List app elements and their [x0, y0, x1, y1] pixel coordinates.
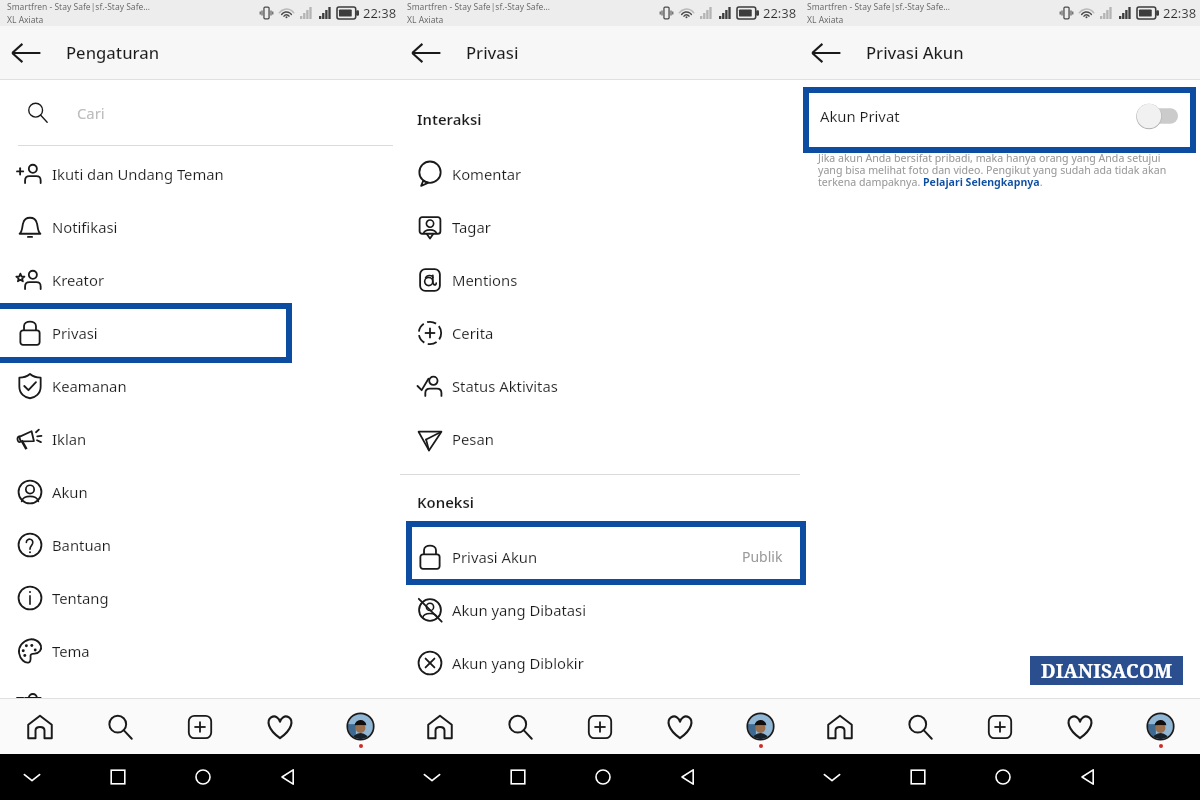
button[interactable]: Create	[960, 699, 1040, 754]
button[interactable]: Recents	[475, 754, 560, 800]
button[interactable]: Keamanan	[0, 359, 400, 412]
staticText: DIANISACOM	[1041, 658, 1173, 684]
button[interactable]: Hide keyboard	[389, 754, 475, 800]
staticText: Tema	[52, 641, 90, 661]
staticText: 22:38	[363, 4, 397, 22]
button[interactable]: Back	[1045, 754, 1130, 800]
button[interactable]: Back	[645, 754, 730, 800]
button[interactable]: Akun Privat	[800, 80, 1200, 151]
button[interactable]: Search	[880, 699, 960, 754]
staticText: Cari	[77, 103, 105, 123]
button[interactable]: Back	[245, 754, 330, 800]
button[interactable]: Home	[0, 699, 80, 754]
staticText: Smartfren - Stay Safe|sf.-Stay Safe…	[807, 1, 951, 13]
button[interactable]: Search	[480, 699, 560, 754]
staticText: XL Axiata	[7, 14, 44, 26]
button[interactable]: Iklan	[0, 412, 400, 465]
button[interactable]: Cari	[0, 80, 400, 145]
button[interactable]: Activity	[240, 699, 320, 754]
button[interactable]: Back	[806, 33, 846, 73]
button[interactable]: Hide keyboard	[789, 754, 875, 800]
button[interactable]: Kreator	[0, 253, 400, 306]
staticText: 22:38	[1163, 4, 1197, 22]
button[interactable]: Komentar	[400, 147, 800, 200]
staticText: Interaksi	[417, 109, 482, 129]
staticText: Privasi Akun	[452, 547, 538, 567]
button[interactable]: Create	[560, 699, 640, 754]
button[interactable]: Pesan	[400, 412, 800, 465]
button[interactable]: Tentang	[0, 571, 400, 624]
button[interactable]: Akun Privat toggle	[1136, 103, 1178, 129]
staticText: Bantuan	[52, 535, 111, 555]
button[interactable]: Jika akun Anda bersifat pribadi, maka ha…	[818, 151, 1178, 189]
staticText: Akun yang Diblokir	[452, 653, 584, 673]
staticText: Akun	[52, 482, 88, 502]
staticText: Tagar	[452, 217, 491, 237]
button[interactable]: Home	[800, 699, 880, 754]
button[interactable]: Hide keyboard	[0, 754, 75, 800]
button[interactable]: Activity	[1040, 699, 1120, 754]
staticText: Cerita	[452, 323, 494, 343]
button[interactable]: Ikuti dan Undang Teman	[0, 147, 400, 200]
staticText: Mentions	[452, 270, 518, 290]
button[interactable]: Akun yang Diblokir	[400, 636, 800, 689]
button[interactable]: Recents	[75, 754, 160, 800]
staticText: Notifikasi	[52, 217, 118, 237]
button[interactable]: Recents	[875, 754, 960, 800]
staticText: Ikuti dan Undang Teman	[52, 164, 224, 184]
staticText: Privasi	[52, 323, 98, 343]
button[interactable]: Akun	[0, 465, 400, 518]
button[interactable]: Tagar	[400, 200, 800, 253]
staticText: Iklan	[52, 429, 87, 449]
staticText: Komentar	[452, 164, 522, 184]
staticText: Keamanan	[52, 376, 127, 396]
button[interactable]: Home	[400, 699, 480, 754]
button[interactable]: Akun yang Dibatasi	[400, 583, 800, 636]
button[interactable]: Profile	[320, 699, 400, 754]
staticText: XL Axiata	[407, 14, 444, 26]
button[interactable]: Search	[80, 699, 160, 754]
button[interactable]: Privasi Akun	[400, 530, 800, 583]
button[interactable]: Activity	[640, 699, 720, 754]
staticText: Kreator	[52, 270, 105, 290]
staticText: Privasi	[466, 41, 519, 64]
button[interactable]: Profile	[1120, 699, 1200, 754]
staticText: Privasi Akun	[866, 41, 964, 64]
button[interactable]: Back	[406, 33, 446, 73]
button[interactable]: Privasi	[0, 306, 400, 359]
staticText: Tentang	[52, 588, 109, 608]
button[interactable]: Notifikasi	[0, 200, 400, 253]
button[interactable]: Home	[160, 754, 245, 800]
staticText: Smartfren - Stay Safe|sf.-Stay Safe…	[7, 1, 151, 13]
button[interactable]: Create	[160, 699, 240, 754]
button[interactable]: Bantuan	[0, 518, 400, 571]
staticText: Akun yang Dibatasi	[452, 600, 587, 620]
button[interactable]: Profile	[720, 699, 800, 754]
staticText: Publik	[742, 547, 783, 566]
button[interactable]: Cerita	[400, 306, 800, 359]
staticText: Status Aktivitas	[452, 376, 558, 396]
staticText: Pengaturan	[66, 41, 160, 64]
staticText: 22:38	[763, 4, 797, 22]
button[interactable]: Home	[960, 754, 1045, 800]
button[interactable]: Status Aktivitas	[400, 359, 800, 412]
staticText: Akun Privat	[820, 106, 900, 126]
staticText: Pesan	[452, 429, 494, 449]
button[interactable]: Tema	[0, 624, 400, 677]
staticText: Koneksi	[417, 492, 474, 512]
staticText: XL Axiata	[807, 14, 844, 26]
button[interactable]: Back	[6, 33, 46, 73]
button[interactable]: Home	[560, 754, 645, 800]
button[interactable]: Mentions	[400, 253, 800, 306]
staticText: Smartfren - Stay Safe|sf.-Stay Safe…	[407, 1, 551, 13]
